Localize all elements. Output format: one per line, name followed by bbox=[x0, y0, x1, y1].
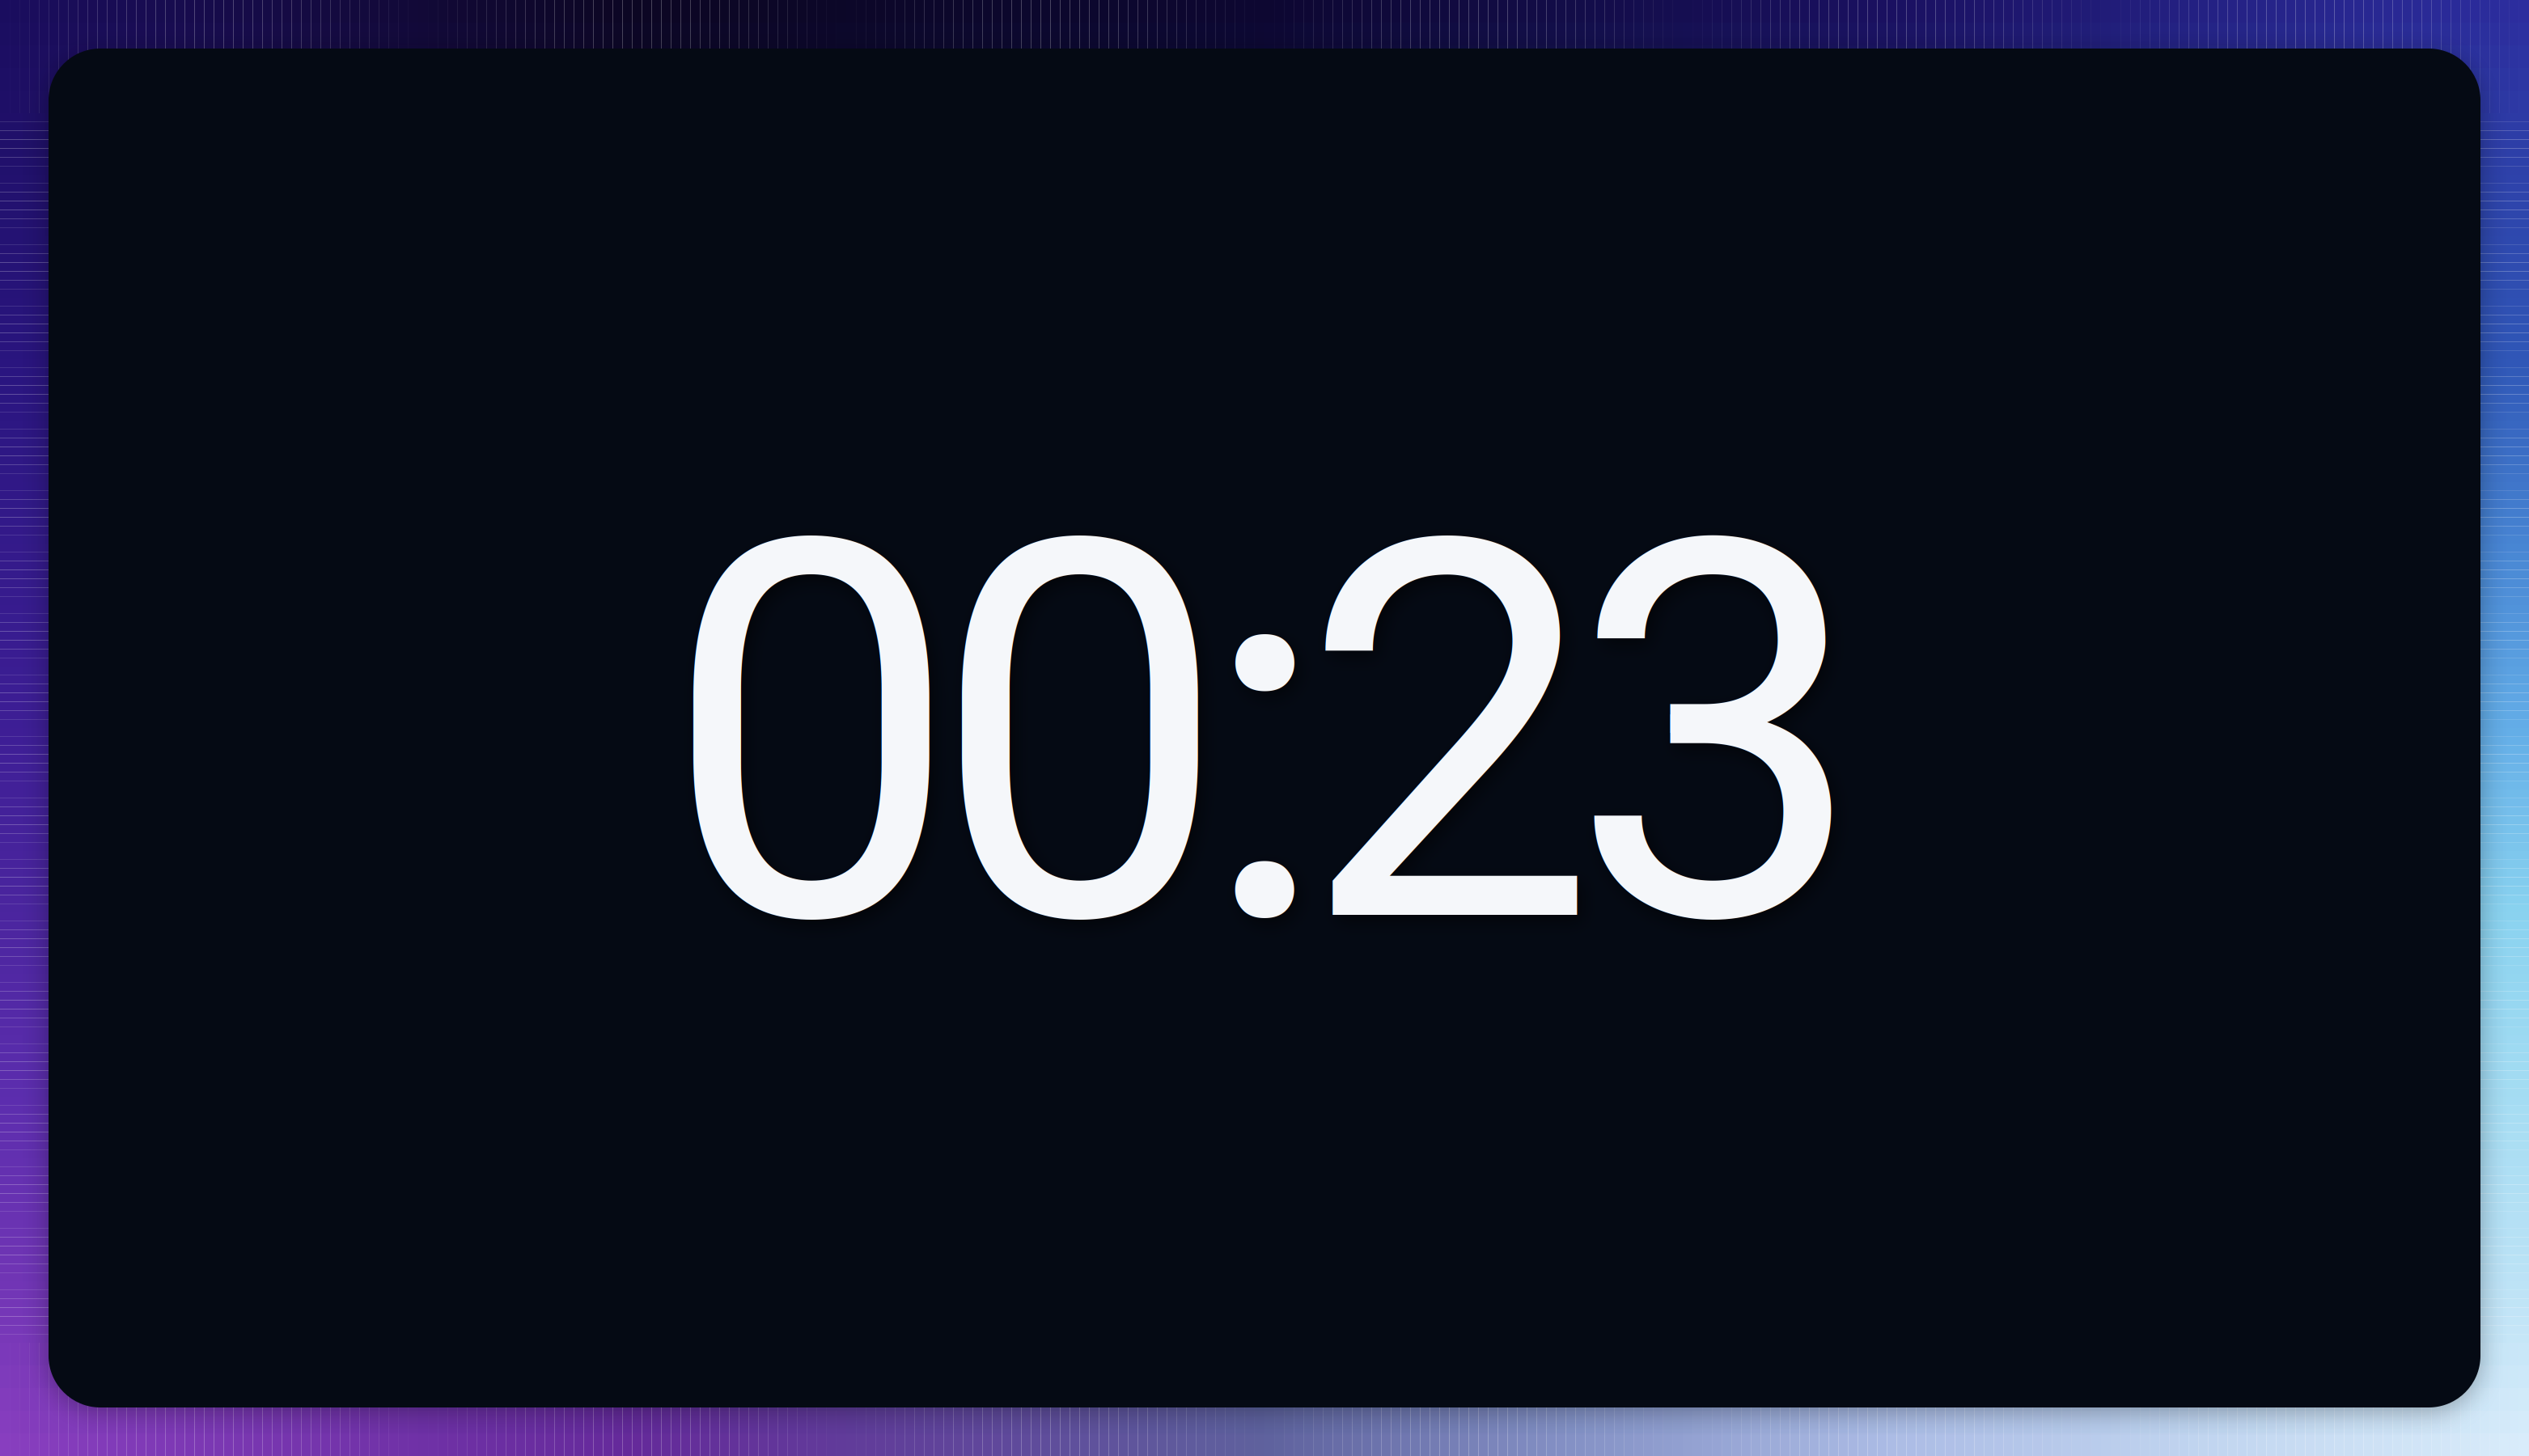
staticText: 00:23 bbox=[664, 427, 1865, 1043]
button[interactable]: 00:23 bbox=[49, 49, 2480, 1407]
